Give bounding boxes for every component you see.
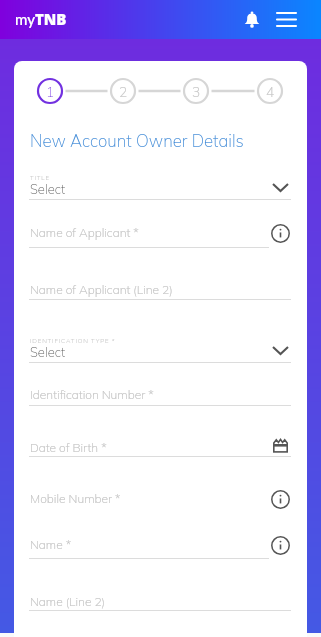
- staticText: TITLE: [30, 174, 50, 182]
- button[interactable]: Pick date: [270, 435, 291, 456]
- button[interactable]: More information: [270, 223, 291, 244]
- button[interactable]: More information: [270, 535, 291, 556]
- staticText: 2: [119, 83, 128, 100]
- staticText: Identification Number *: [30, 387, 154, 402]
- staticText: 3: [192, 83, 201, 100]
- staticText: Select: [30, 344, 66, 360]
- staticText: Mobile Number *: [30, 491, 121, 506]
- staticText: 4: [266, 83, 275, 100]
- staticText: IDENTIFICATION TYPE *: [30, 337, 116, 345]
- button[interactable]: More information: [270, 489, 291, 510]
- button[interactable]: Mobile Number *: [29, 480, 291, 513]
- staticText: Name of Applicant *: [30, 225, 139, 240]
- button[interactable]: Name (Line 2): [29, 578, 291, 611]
- button[interactable]: 4: [258, 79, 282, 103]
- button[interactable]: IDENTIFICATION TYPE *: [29, 330, 291, 363]
- button[interactable]: Name *: [29, 526, 291, 559]
- staticText: 1: [46, 83, 55, 100]
- staticText: Name (Line 2): [30, 594, 106, 609]
- button[interactable]: Name of Applicant *: [29, 215, 291, 248]
- staticText: Name of Applicant (Line 2): [30, 282, 173, 297]
- button[interactable]: Notifications: [238, 6, 265, 33]
- button[interactable]: Menu: [272, 6, 301, 33]
- button[interactable]: TITLE: [29, 167, 291, 200]
- button[interactable]: Identification Number *: [29, 373, 291, 406]
- staticText: New Account Owner Details: [30, 130, 244, 151]
- staticText: Select: [30, 181, 66, 197]
- staticText: Name *: [30, 537, 72, 552]
- button[interactable]: 1: [38, 79, 62, 103]
- button[interactable]: 2: [111, 79, 135, 103]
- button[interactable]: Name of Applicant (Line 2): [29, 267, 291, 300]
- staticText: myTNB: [15, 9, 67, 29]
- button[interactable]: Date of Birth *: [29, 424, 291, 457]
- button[interactable]: 3: [184, 79, 208, 103]
- staticText: Date of Birth *: [30, 440, 107, 455]
